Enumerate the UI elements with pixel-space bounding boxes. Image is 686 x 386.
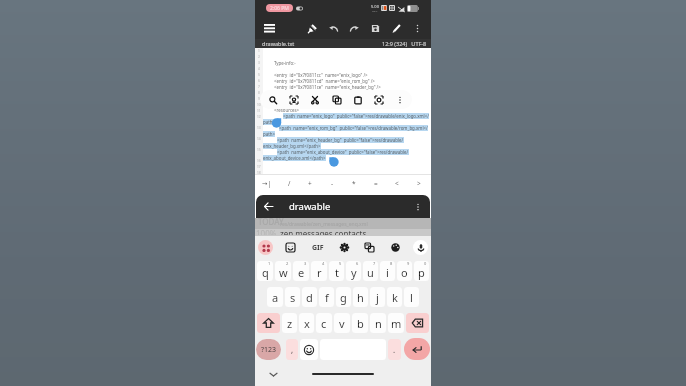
button[interactable]: Select all [285, 91, 302, 108]
button[interactable]: / [279, 175, 299, 192]
button[interactable]: Theme [388, 240, 403, 255]
staticText: 2:06 PM [270, 5, 289, 12]
button[interactable]: z [282, 313, 297, 333]
staticText: - [331, 179, 334, 188]
button[interactable]: 3 [293, 261, 309, 281]
staticText: + [308, 179, 312, 188]
staticText: 11 [257, 109, 261, 113]
button[interactable]: x [299, 313, 314, 333]
button[interactable]: Edit [386, 18, 407, 38]
staticText: 10 [257, 103, 261, 107]
button[interactable]: Voice input [413, 240, 428, 255]
button[interactable]: < [387, 175, 407, 192]
button[interactable]: m [388, 313, 404, 333]
button[interactable]: - [322, 175, 342, 192]
button[interactable]: 4 [311, 261, 327, 281]
button[interactable]: , [286, 339, 298, 360]
button[interactable]: Pin [302, 18, 323, 38]
button[interactable]: . [388, 339, 401, 360]
button[interactable]: s [285, 287, 300, 307]
button[interactable]: ?123 [256, 339, 281, 360]
button[interactable]: Undo [323, 18, 344, 38]
button[interactable]: →| [257, 175, 277, 192]
button[interactable]: f [319, 287, 334, 307]
staticText: <resources> [274, 107, 300, 113]
staticText: 4 [322, 261, 325, 266]
staticText: <entry id="0x7f0811cc" name="enix_logo" … [274, 72, 368, 78]
button[interactable]: 1 [257, 261, 273, 281]
button[interactable]: Paste [349, 91, 366, 108]
staticText: 7 [373, 261, 376, 266]
button[interactable]: * [344, 175, 364, 192]
staticText: 4 [258, 67, 260, 71]
button[interactable]: d [302, 287, 317, 307]
button[interactable]: Shift [257, 313, 280, 333]
button[interactable]: Settings [337, 240, 352, 255]
staticText: u [367, 265, 374, 280]
staticText: 1 [258, 49, 260, 53]
button[interactable]: Stickers [283, 240, 298, 255]
button[interactable]: 2 [275, 261, 291, 281]
button[interactable]: Emoji [300, 339, 318, 360]
staticText: p [418, 265, 425, 280]
button[interactable]: h [353, 287, 368, 307]
staticText: 15 [257, 148, 261, 152]
button[interactable]: Copy [328, 91, 345, 108]
staticText: 12:9 (324) UTF-8 [382, 40, 427, 47]
staticText: < [395, 179, 399, 188]
staticText: 1 [268, 261, 271, 266]
staticText: x [304, 316, 310, 331]
staticText: 12 [257, 115, 261, 119]
button[interactable]: n [370, 313, 386, 333]
staticText: TODAY [258, 216, 284, 227]
button[interactable]: GIF [309, 240, 327, 255]
staticText: w [279, 265, 288, 280]
button[interactable]: Translate [362, 240, 377, 255]
button[interactable]: Enter [404, 338, 430, 360]
button[interactable]: 7 [363, 261, 378, 281]
button[interactable]: Save [365, 18, 386, 38]
button[interactable]: 5 [329, 261, 344, 281]
staticText: 3 [258, 61, 260, 65]
staticText: 8 [258, 91, 260, 95]
button[interactable]: Cut [306, 91, 323, 108]
staticText: n [375, 316, 382, 331]
button[interactable]: Backspace [406, 313, 429, 333]
button[interactable]: 9 [397, 261, 412, 281]
button[interactable]: Toolbox [258, 240, 273, 255]
button[interactable]: j [370, 287, 385, 307]
button[interactable]: 0 [414, 261, 429, 281]
staticText: f [325, 290, 329, 305]
staticText: v [339, 316, 345, 331]
staticText: 16 [257, 159, 261, 163]
button[interactable]: > [409, 175, 429, 192]
staticText: e [298, 265, 305, 280]
button[interactable]: + [300, 175, 320, 192]
button[interactable]: 6 [346, 261, 361, 281]
staticText: path> [263, 119, 275, 125]
staticText: path> [263, 131, 275, 137]
staticText: 2 [258, 55, 260, 59]
button[interactable]: Back [260, 198, 277, 215]
button[interactable]: g [336, 287, 351, 307]
button[interactable]: k [387, 287, 402, 307]
staticText: 5 [258, 73, 260, 77]
button[interactable]: a [267, 287, 283, 307]
button[interactable]: b [352, 313, 368, 333]
button[interactable]: More options [410, 199, 426, 215]
button[interactable]: = [366, 175, 386, 192]
button[interactable]: l [404, 287, 419, 307]
button[interactable]: v [334, 313, 350, 333]
button[interactable]: Menu [261, 20, 277, 36]
staticText: y [351, 265, 357, 280]
button[interactable]: 8 [380, 261, 395, 281]
button[interactable]: More [391, 91, 408, 108]
staticText: . [393, 344, 396, 355]
button[interactable]: Search [264, 91, 281, 108]
button[interactable]: Lens [370, 91, 387, 108]
button[interactable]: Redo [344, 18, 365, 38]
button[interactable]: More options [407, 18, 428, 38]
button[interactable]: c [316, 313, 332, 333]
staticText: 5 [339, 261, 342, 266]
